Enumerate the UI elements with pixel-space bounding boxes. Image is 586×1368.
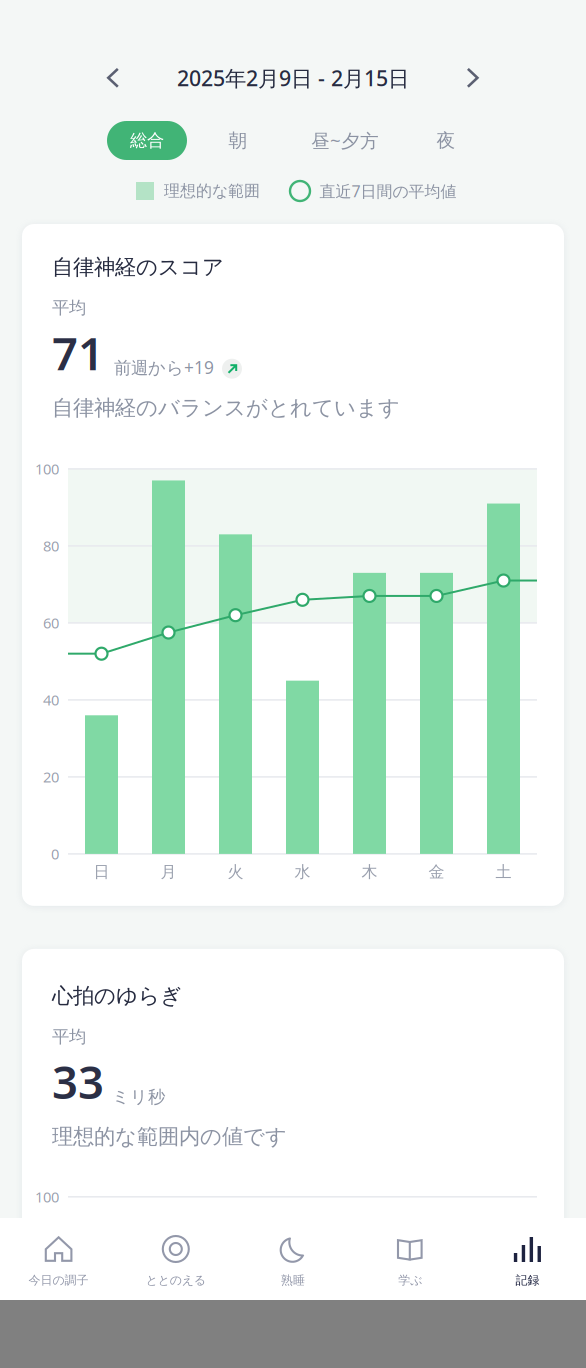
button[interactable]: 昼~夕方 bbox=[300, 121, 390, 160]
button[interactable]: 朝 bbox=[210, 121, 266, 160]
staticText: 40 bbox=[43, 690, 59, 710]
staticText: 金 bbox=[428, 862, 444, 882]
button[interactable]: 総合 bbox=[107, 121, 187, 160]
staticText: 学ぶ bbox=[398, 1273, 422, 1288]
staticText: 水 bbox=[294, 862, 310, 882]
staticText: 今日の調子 bbox=[29, 1273, 89, 1288]
staticText: 理想的な範囲 bbox=[164, 181, 260, 201]
staticText: 自律神経のバランスがとれています bbox=[52, 395, 400, 421]
staticText: 熟睡 bbox=[281, 1273, 305, 1288]
staticText: ミリ秒 bbox=[112, 1086, 165, 1108]
staticText: 33 bbox=[52, 1051, 104, 1112]
staticText: ととのえる bbox=[146, 1273, 206, 1288]
staticText: 0 bbox=[51, 844, 59, 864]
staticText: 記録 bbox=[515, 1273, 539, 1288]
staticText: 前週から+19 bbox=[114, 356, 214, 379]
staticText: 20 bbox=[43, 767, 59, 787]
staticText: 100 bbox=[35, 459, 59, 479]
staticText: 平均 bbox=[52, 297, 86, 318]
staticText: 火 bbox=[227, 862, 243, 882]
staticText: 100 bbox=[35, 1187, 59, 1207]
button[interactable]: 次の週 bbox=[451, 56, 495, 100]
staticText: 直近7日間の平均値 bbox=[319, 180, 456, 202]
staticText: 土 bbox=[495, 862, 511, 882]
staticText: 2025年2月9日 - 2月15日 bbox=[177, 64, 409, 92]
button[interactable]: 夜 bbox=[418, 121, 474, 160]
staticText: 朝 bbox=[228, 129, 247, 152]
staticText: 71 bbox=[52, 322, 104, 383]
button[interactable]: 学ぶ bbox=[352, 1218, 469, 1300]
staticText: 木 bbox=[361, 862, 377, 882]
staticText: 総合 bbox=[130, 130, 164, 151]
staticText: 80 bbox=[43, 536, 59, 556]
staticText: 昼~夕方 bbox=[311, 128, 379, 153]
staticText: 月 bbox=[160, 862, 176, 882]
staticText: 平均 bbox=[52, 1026, 86, 1047]
staticText: 心拍のゆらぎ bbox=[52, 983, 182, 1009]
button[interactable]: 記録 bbox=[469, 1218, 586, 1300]
staticText: 夜 bbox=[436, 129, 455, 152]
button[interactable]: ととのえる bbox=[117, 1218, 234, 1300]
staticText: 理想的な範囲内の値です bbox=[52, 1124, 287, 1150]
staticText: 日 bbox=[93, 862, 109, 882]
button[interactable]: 熟睡 bbox=[234, 1218, 352, 1300]
staticText: 60 bbox=[43, 613, 59, 633]
staticText: 自律神経のスコア bbox=[52, 254, 224, 280]
button[interactable]: 前の週 bbox=[91, 56, 135, 100]
button[interactable]: 今日の調子 bbox=[0, 1218, 117, 1300]
